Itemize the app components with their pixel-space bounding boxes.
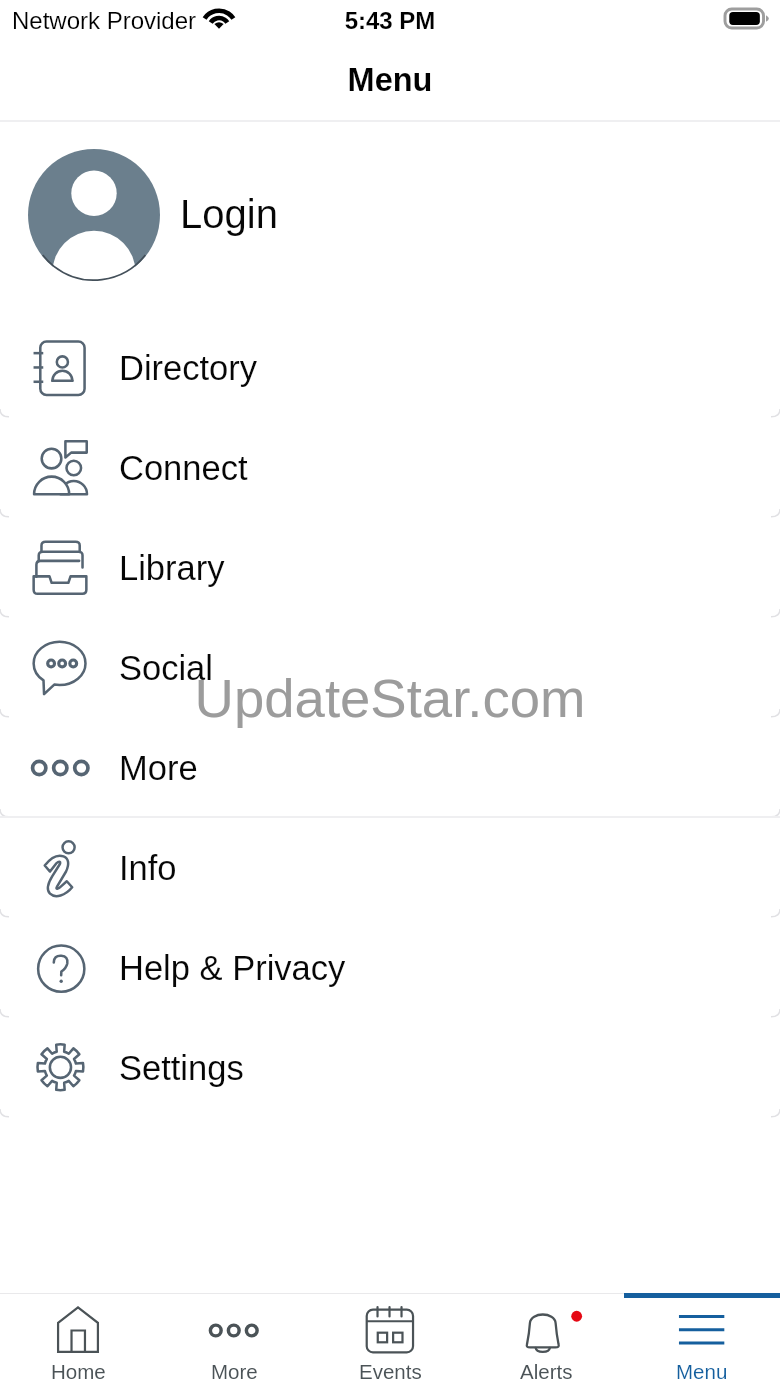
staticText: Directory	[119, 349, 258, 388]
button[interactable]: Directory	[0, 318, 780, 418]
button[interactable]: Home	[0, 1293, 156, 1387]
staticText: Login	[180, 192, 278, 237]
button[interactable]: Login	[0, 122, 780, 318]
staticText: Library	[119, 549, 225, 588]
button[interactable]: More	[156, 1293, 312, 1387]
staticText: UpdateStar.com	[0, 668, 780, 729]
button[interactable]: Connect	[0, 418, 780, 518]
staticText: Info	[119, 849, 177, 888]
button[interactable]: Menu	[624, 1293, 780, 1387]
staticText: Menu	[0, 62, 780, 98]
button[interactable]: Social	[0, 618, 780, 718]
staticText: Menu	[676, 1360, 728, 1383]
staticText: Settings	[119, 1049, 244, 1088]
staticText: Events	[359, 1360, 422, 1383]
staticText: Social	[119, 649, 213, 688]
other: Wi-Fi	[204, 7, 234, 29]
other: Battery full	[724, 8, 770, 29]
button[interactable]: Alerts	[468, 1293, 624, 1387]
staticText: Home	[51, 1360, 106, 1383]
staticText: Connect	[119, 449, 248, 488]
staticText: Network Provider	[12, 7, 197, 34]
staticText: More	[211, 1360, 258, 1383]
button[interactable]: Events	[312, 1293, 468, 1387]
staticText: More	[119, 749, 198, 788]
button[interactable]: Info	[0, 818, 780, 918]
button[interactable]: Library	[0, 518, 780, 618]
button[interactable]: Help & Privacy	[0, 918, 780, 1018]
button[interactable]: More	[0, 718, 780, 818]
staticText: Help & Privacy	[119, 949, 346, 988]
button[interactable]: Settings	[0, 1018, 780, 1118]
staticText: 5:43 PM	[0, 7, 780, 34]
staticText: Alerts	[520, 1360, 573, 1383]
